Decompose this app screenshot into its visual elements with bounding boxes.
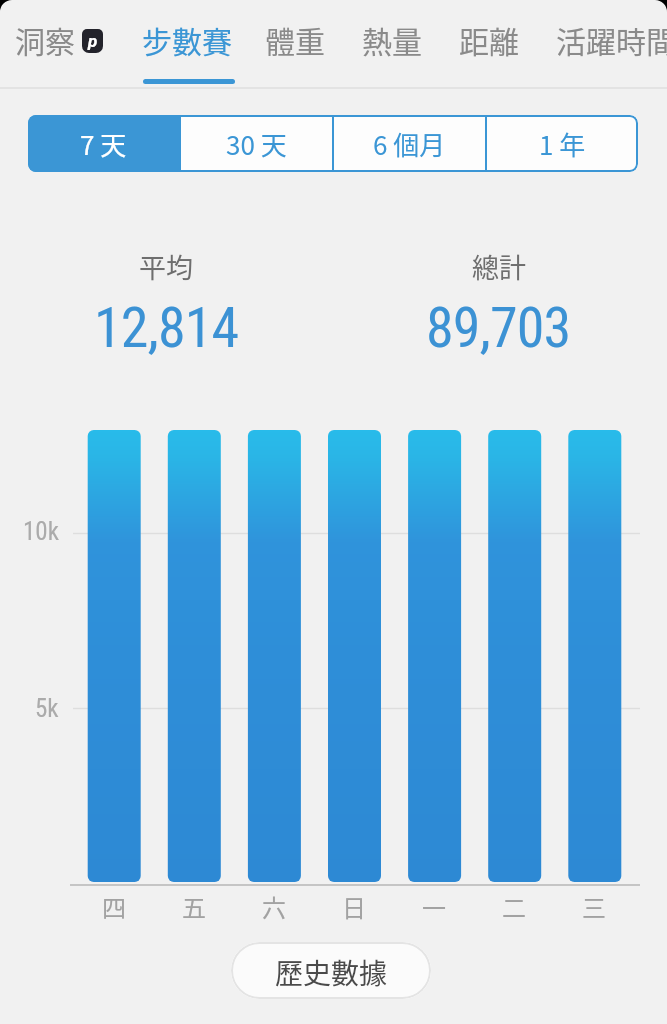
staticText: 10k bbox=[23, 517, 59, 546]
staticText: 體重 bbox=[265, 18, 325, 60]
staticText: 一 bbox=[422, 889, 446, 924]
staticText: 30 天 bbox=[226, 125, 287, 163]
staticText: 89,703 bbox=[426, 295, 571, 361]
button[interactable]: 歷史數據 bbox=[231, 942, 431, 999]
staticText: 二 bbox=[502, 889, 526, 924]
staticText: 1 年 bbox=[539, 125, 586, 163]
staticText: 五 bbox=[182, 889, 206, 924]
staticText: 總計 bbox=[472, 247, 526, 286]
staticText: 活躍時間 bbox=[556, 18, 667, 60]
button[interactable]: 距離 bbox=[454, 18, 524, 60]
button[interactable]: 步數賽 bbox=[137, 18, 237, 60]
staticText: 洞察 bbox=[15, 18, 75, 60]
button[interactable]: 30 天 bbox=[181, 115, 332, 172]
staticText: 7 天 bbox=[80, 125, 127, 163]
button[interactable]: 熱量 bbox=[357, 18, 427, 60]
staticText: 5k bbox=[35, 694, 59, 723]
button[interactable]: 7 天 bbox=[28, 115, 179, 172]
button[interactable]: 活躍時間 bbox=[556, 18, 667, 60]
staticText: p bbox=[88, 31, 98, 51]
staticText: 日 bbox=[342, 889, 366, 924]
staticText: 歷史數據 bbox=[275, 952, 388, 993]
staticText: 步數賽 bbox=[142, 18, 232, 60]
staticText: 距離 bbox=[459, 18, 519, 60]
button[interactable]: 6 個月 bbox=[334, 115, 485, 172]
staticText: 平均 bbox=[139, 247, 193, 286]
staticText: 六 bbox=[262, 889, 286, 924]
staticText: 6 個月 bbox=[373, 125, 446, 163]
staticText: 12,814 bbox=[94, 295, 239, 361]
button[interactable]: 洞察 bbox=[10, 18, 80, 60]
staticText: 熱量 bbox=[362, 18, 422, 60]
staticText: 四 bbox=[102, 889, 126, 924]
staticText: 三 bbox=[582, 889, 606, 924]
button[interactable]: 體重 bbox=[259, 18, 330, 60]
button[interactable]: 1 年 bbox=[487, 115, 638, 172]
